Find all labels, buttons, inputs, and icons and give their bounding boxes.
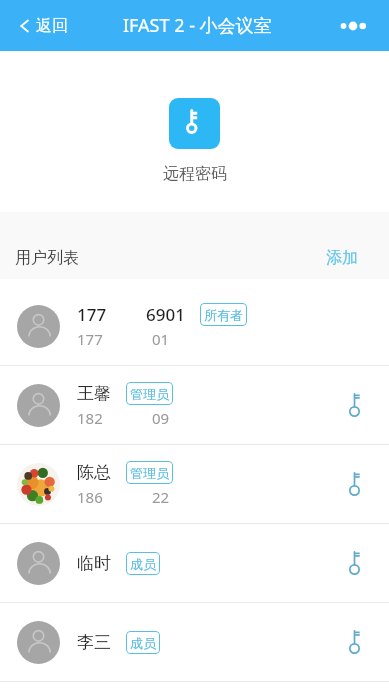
staticText: 177	[77, 303, 107, 326]
staticText: 09	[152, 408, 170, 428]
staticText: 22	[152, 487, 170, 507]
button[interactable]: Key	[339, 624, 375, 660]
staticText: 陈总	[77, 462, 111, 483]
button[interactable]: 王馨	[0, 366, 389, 445]
staticText: 远程密码	[163, 164, 227, 184]
staticText: 所有者	[204, 307, 243, 323]
staticText: 临时	[77, 553, 111, 574]
button[interactable]: More options	[330, 9, 389, 43]
button[interactable]: 临时	[0, 524, 389, 603]
button[interactable]: 177	[0, 287, 389, 366]
staticText: 186	[77, 487, 103, 507]
button[interactable]: Key	[339, 387, 375, 423]
staticText: 返回	[36, 16, 68, 36]
staticText: 用户列表	[15, 248, 79, 268]
button[interactable]: 李三	[0, 603, 389, 682]
button[interactable]: 添加	[295, 238, 389, 279]
staticText: 添加	[326, 248, 358, 268]
staticText: 王馨	[77, 383, 111, 404]
button[interactable]: Key	[339, 545, 375, 581]
staticText: IFAST 2 - 小会议室	[123, 13, 272, 38]
staticText: 李三	[77, 632, 111, 653]
staticText: 管理员	[130, 465, 169, 481]
staticText: 01	[152, 329, 170, 349]
button[interactable]: 陈总	[0, 445, 389, 524]
staticText: 6901	[146, 303, 185, 326]
staticText: 成员	[130, 556, 156, 572]
staticText: 管理员	[130, 386, 169, 402]
button[interactable]: 返回	[0, 8, 80, 44]
button[interactable]: Remote password	[169, 98, 220, 149]
staticText: 成员	[130, 635, 156, 651]
staticText: 177	[77, 329, 103, 349]
staticText: 182	[77, 408, 103, 428]
button[interactable]: Key	[339, 466, 375, 502]
